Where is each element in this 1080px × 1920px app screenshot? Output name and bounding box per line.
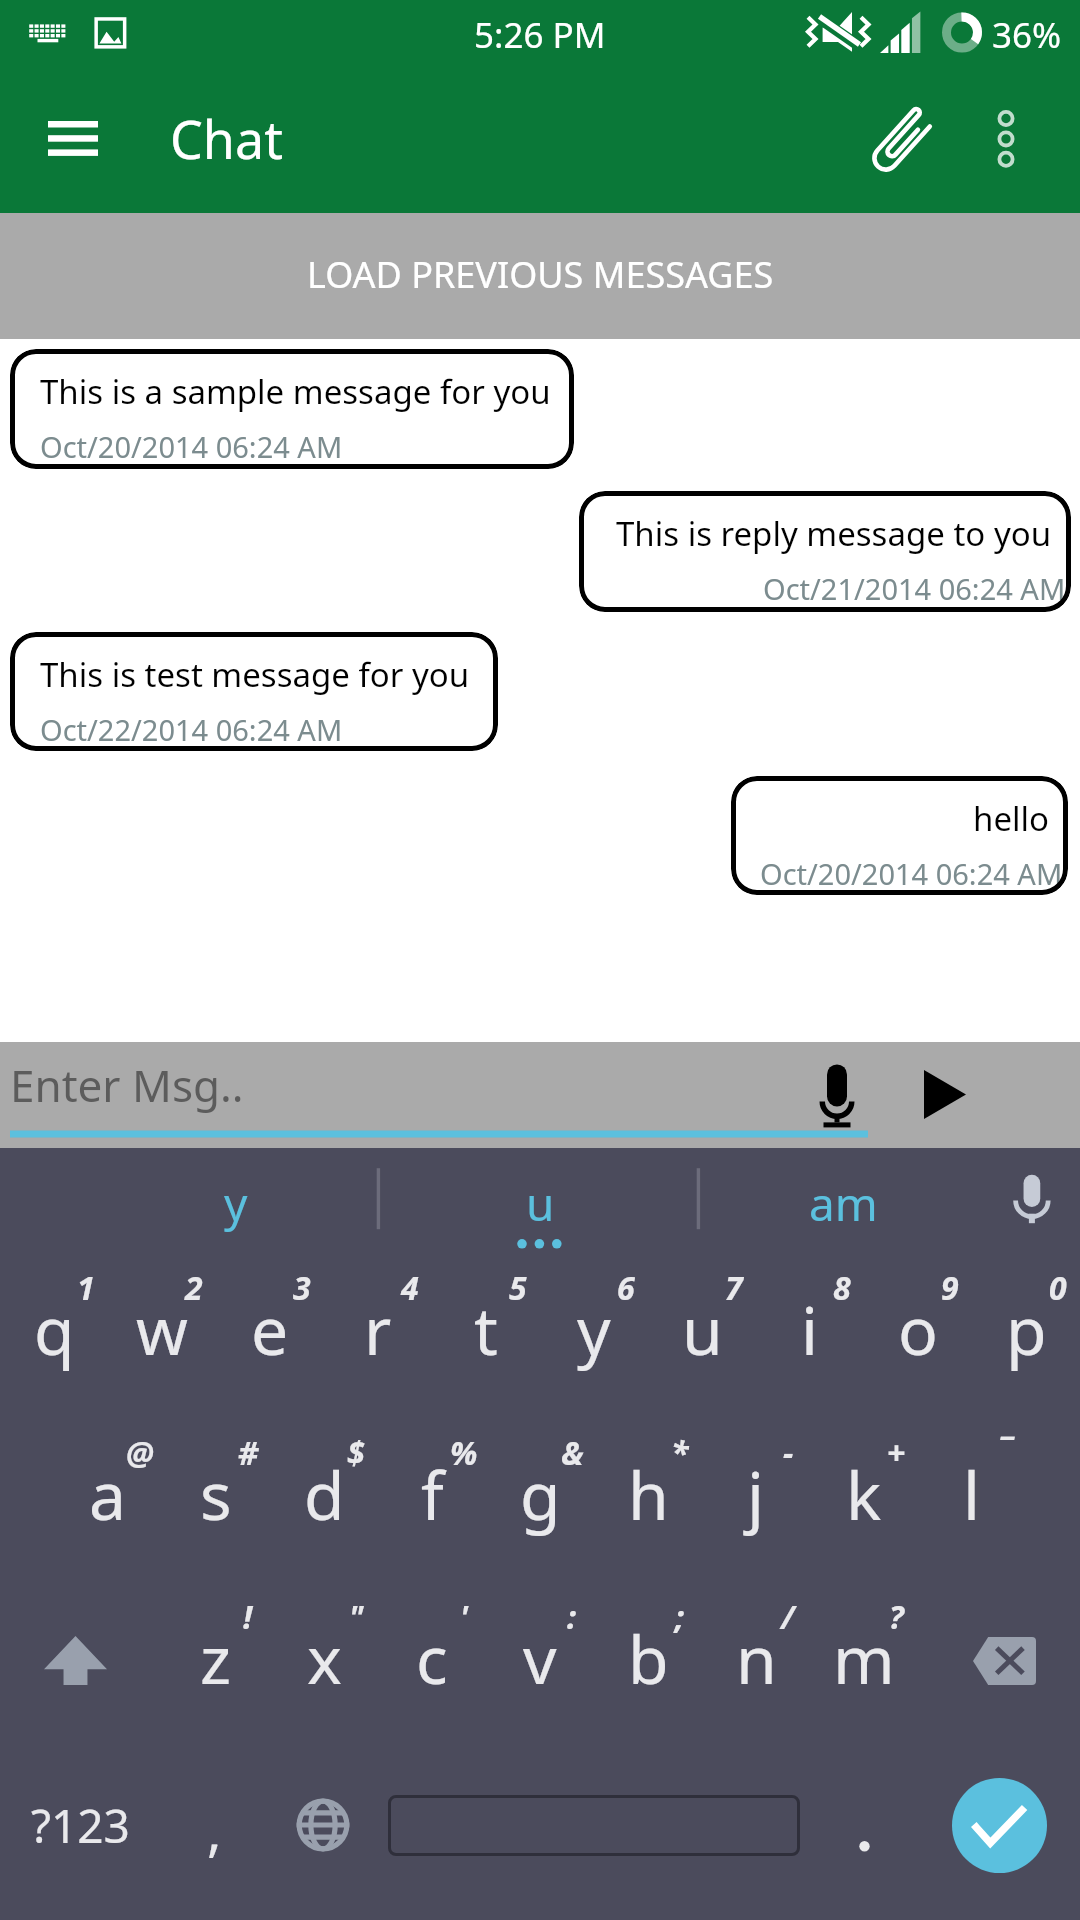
staticText: " — [349, 1595, 364, 1639]
button[interactable]: g — [486, 1449, 594, 1579]
button[interactable]: Attach file — [858, 92, 950, 184]
staticText: Oct/20/2014 06:24 AM — [760, 854, 1063, 893]
staticText: m — [833, 1613, 895, 1703]
staticText: 4 — [401, 1266, 419, 1310]
staticText: Enter Msg.. — [10, 1055, 244, 1115]
button[interactable]: v — [486, 1613, 594, 1743]
button[interactable]: f — [378, 1449, 486, 1579]
button[interactable]: ?123 — [10, 1780, 150, 1870]
button[interactable]: x — [270, 1613, 378, 1743]
staticText: 5 — [509, 1266, 527, 1310]
button[interactable]: z — [162, 1613, 270, 1743]
staticText: This is reply message to you — [616, 511, 1052, 556]
button[interactable]: u — [648, 1284, 756, 1414]
staticText: Oct/22/2014 06:24 AM — [40, 710, 343, 749]
staticText: t — [474, 1284, 498, 1374]
button[interactable]: u — [450, 1156, 630, 1250]
button[interactable]: This is reply message to you — [579, 491, 1071, 612]
button[interactable]: y — [540, 1284, 648, 1414]
button[interactable]: , — [144, 1785, 284, 1875]
button[interactable]: This is test message for you — [10, 632, 498, 751]
staticText: w — [136, 1284, 188, 1374]
staticText: o — [898, 1284, 938, 1374]
button[interactable]: m — [810, 1613, 918, 1743]
staticText: u — [682, 1284, 723, 1374]
button[interactable]: p — [972, 1284, 1080, 1414]
button[interactable]: r — [324, 1284, 432, 1414]
staticText: b — [628, 1613, 669, 1703]
button[interactable]: hello — [731, 776, 1068, 895]
staticText: n — [736, 1613, 777, 1703]
staticText: p — [1006, 1284, 1047, 1374]
button[interactable]: o — [864, 1284, 972, 1414]
staticText: 7 — [725, 1266, 743, 1310]
button[interactable]: w — [108, 1284, 216, 1414]
staticText: Chat — [170, 103, 283, 174]
button[interactable]: Period — [819, 1801, 909, 1891]
button[interactable]: Shift — [44, 1636, 107, 1685]
button[interactable]: d — [270, 1449, 378, 1579]
staticText: h — [628, 1449, 669, 1539]
button[interactable]: Done — [952, 1778, 1047, 1873]
staticText: # — [238, 1431, 259, 1475]
staticText: j — [747, 1449, 765, 1539]
staticText: l — [963, 1449, 981, 1539]
staticText: z — [200, 1613, 232, 1703]
staticText: 9 — [941, 1266, 959, 1310]
staticText: am — [809, 1172, 878, 1235]
button[interactable]: h — [594, 1449, 702, 1579]
staticText: d — [304, 1449, 345, 1539]
button[interactable]: Send message — [912, 1054, 982, 1136]
staticText: , — [207, 1793, 222, 1867]
staticText: - — [783, 1431, 794, 1475]
button[interactable]: j — [702, 1449, 810, 1579]
staticText: 8 — [833, 1266, 851, 1310]
button[interactable]: s — [162, 1449, 270, 1579]
staticText: ' — [460, 1595, 469, 1639]
button[interactable]: y — [146, 1156, 326, 1250]
staticText: + — [887, 1431, 906, 1475]
button[interactable]: c — [378, 1613, 486, 1743]
button[interactable]: Space — [388, 1795, 800, 1856]
staticText: @ — [126, 1431, 154, 1475]
staticText: ? — [889, 1595, 904, 1639]
staticText: q — [34, 1284, 75, 1374]
staticText: This is test message for you — [40, 652, 470, 697]
staticText: a — [89, 1449, 127, 1539]
button[interactable]: This is a sample message for you — [10, 349, 574, 469]
staticText: * — [671, 1431, 689, 1475]
staticText: & — [561, 1431, 584, 1475]
button[interactable]: Voice typing — [1007, 1169, 1057, 1227]
button[interactable]: b — [594, 1613, 702, 1743]
button[interactable]: i — [756, 1284, 864, 1414]
button[interactable]: t — [432, 1284, 540, 1414]
button[interactable]: n — [702, 1613, 810, 1743]
staticText: v — [523, 1613, 557, 1703]
button[interactable]: q — [0, 1284, 108, 1414]
button[interactable]: LOAD PREVIOUS MESSAGES — [0, 213, 1080, 339]
button[interactable]: a — [54, 1449, 162, 1579]
staticText: ¯ — [997, 1431, 1011, 1475]
staticText: 5:26 PM — [474, 11, 606, 59]
button[interactable]: l — [918, 1449, 1026, 1579]
button[interactable]: More options — [960, 96, 1052, 188]
button[interactable]: Backspace — [973, 1637, 1036, 1685]
staticText: e — [251, 1284, 289, 1374]
button[interactable]: Change language — [293, 1795, 353, 1855]
staticText: i — [801, 1284, 819, 1374]
staticText: $ — [347, 1431, 365, 1475]
staticText: r — [364, 1284, 392, 1374]
staticText: 3 — [293, 1266, 311, 1310]
staticText: ; — [675, 1595, 685, 1639]
staticText: s — [200, 1449, 232, 1539]
staticText: 6 — [617, 1266, 635, 1310]
button[interactable]: k — [810, 1449, 918, 1579]
staticText: ! — [243, 1595, 253, 1639]
button[interactable]: am — [753, 1156, 933, 1250]
staticText: y — [224, 1172, 248, 1235]
staticText: hello — [973, 796, 1049, 841]
button[interactable]: e — [216, 1284, 324, 1414]
button[interactable]: Open navigation menu — [28, 96, 118, 186]
staticText: Oct/20/2014 06:24 AM — [40, 427, 343, 466]
button[interactable]: Voice input — [800, 1054, 874, 1136]
